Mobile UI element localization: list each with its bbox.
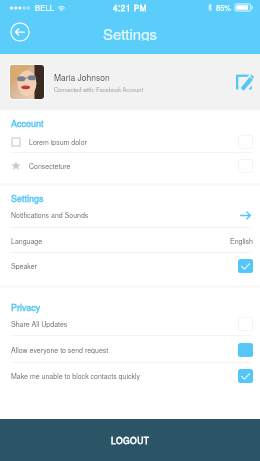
button[interactable]: Consecteture	[0, 157, 260, 175]
button[interactable]: Toggle on	[238, 343, 253, 357]
button[interactable]: Open	[238, 208, 253, 222]
staticText: Consecteture	[29, 161, 238, 171]
button[interactable]: Edit profile	[231, 68, 259, 96]
button[interactable]: Toggle off	[238, 317, 253, 331]
button[interactable]: Maria Johnson	[0, 54, 260, 110]
staticText: Lorem ipsum dolor	[29, 137, 238, 147]
staticText: Settings	[103, 23, 158, 41]
button[interactable]: Toggle off	[238, 159, 253, 173]
staticText: Allow everyone to send request	[11, 345, 238, 355]
button[interactable]: LOGOUT	[0, 419, 260, 461]
staticText: Settings	[11, 192, 44, 205]
staticText: BELL	[35, 2, 55, 13]
staticText: Notifications and Sounds	[11, 210, 238, 220]
staticText: Connected with: Facebook Account	[54, 85, 144, 93]
button[interactable]: Lorem ipsum dolor	[0, 133, 260, 151]
button[interactable]: Language	[0, 232, 260, 250]
staticText: Maria Johnson	[54, 71, 110, 83]
staticText: Speaker	[11, 261, 238, 271]
button[interactable]: Checked	[238, 369, 253, 383]
button[interactable]: Make me unable to block contacts quickly	[0, 367, 260, 385]
staticText: 85%	[216, 2, 232, 13]
staticText: 4:21 PM	[113, 2, 147, 13]
staticText: Make me unable to block contacts quickly	[11, 371, 238, 381]
button[interactable]: Back	[10, 22, 30, 42]
button[interactable]: Allow everyone to send request	[0, 341, 260, 359]
button[interactable]: Toggle off	[238, 135, 253, 149]
staticText: Language	[11, 236, 230, 246]
staticText: Privacy	[11, 301, 41, 314]
button[interactable]: Notifications and Sounds	[0, 206, 260, 224]
staticText: English	[230, 236, 253, 246]
staticText: LOGOUT	[111, 434, 150, 446]
button[interactable]: Speaker	[0, 257, 260, 275]
button[interactable]: Share All Updates	[0, 315, 260, 333]
staticText: Share All Updates	[11, 319, 238, 329]
button[interactable]: Checked	[238, 259, 253, 273]
staticText: Account	[11, 117, 44, 130]
